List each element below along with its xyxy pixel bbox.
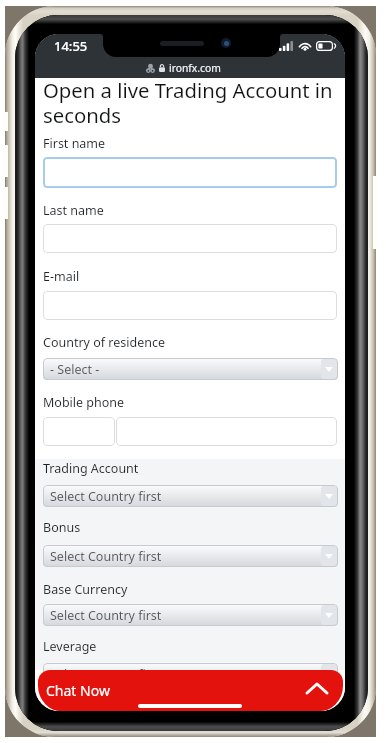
staticText: E-mail xyxy=(43,268,80,285)
staticText: Select Country first xyxy=(50,488,162,505)
staticText: - Select - xyxy=(50,361,100,378)
button[interactable]: - Select - xyxy=(43,358,338,380)
button[interactable]: Select Country first xyxy=(43,545,338,567)
staticText: 14:55 xyxy=(54,37,88,55)
button[interactable] xyxy=(43,417,115,446)
staticText: Bonus xyxy=(43,519,81,536)
staticText: Leverage xyxy=(43,638,97,655)
button[interactable] xyxy=(43,224,337,253)
staticText: Open a live Trading Account in seconds xyxy=(43,76,337,129)
button[interactable] xyxy=(43,157,337,188)
staticText: Last name xyxy=(43,202,104,219)
button[interactable]: Select Country first xyxy=(43,663,338,685)
staticText: Trading Account xyxy=(43,460,139,477)
button[interactable]: Select Country first xyxy=(43,604,338,626)
button[interactable] xyxy=(43,291,337,320)
button[interactable]: Chat Now xyxy=(38,670,343,711)
staticText: First name xyxy=(43,135,106,152)
button[interactable] xyxy=(116,417,337,446)
staticText: Select Country first xyxy=(50,548,162,565)
staticText: Country of residence xyxy=(43,334,166,351)
staticText: Mobile phone xyxy=(43,394,125,411)
button[interactable]: Select Country first xyxy=(43,485,338,507)
other: Expand chat xyxy=(307,684,327,693)
staticText: Select Country first xyxy=(50,666,162,683)
staticText: Base Currency xyxy=(43,581,128,598)
staticText: Chat Now xyxy=(46,681,110,700)
staticText: Select Country first xyxy=(50,607,162,624)
staticText: ironfx.com xyxy=(169,61,221,75)
